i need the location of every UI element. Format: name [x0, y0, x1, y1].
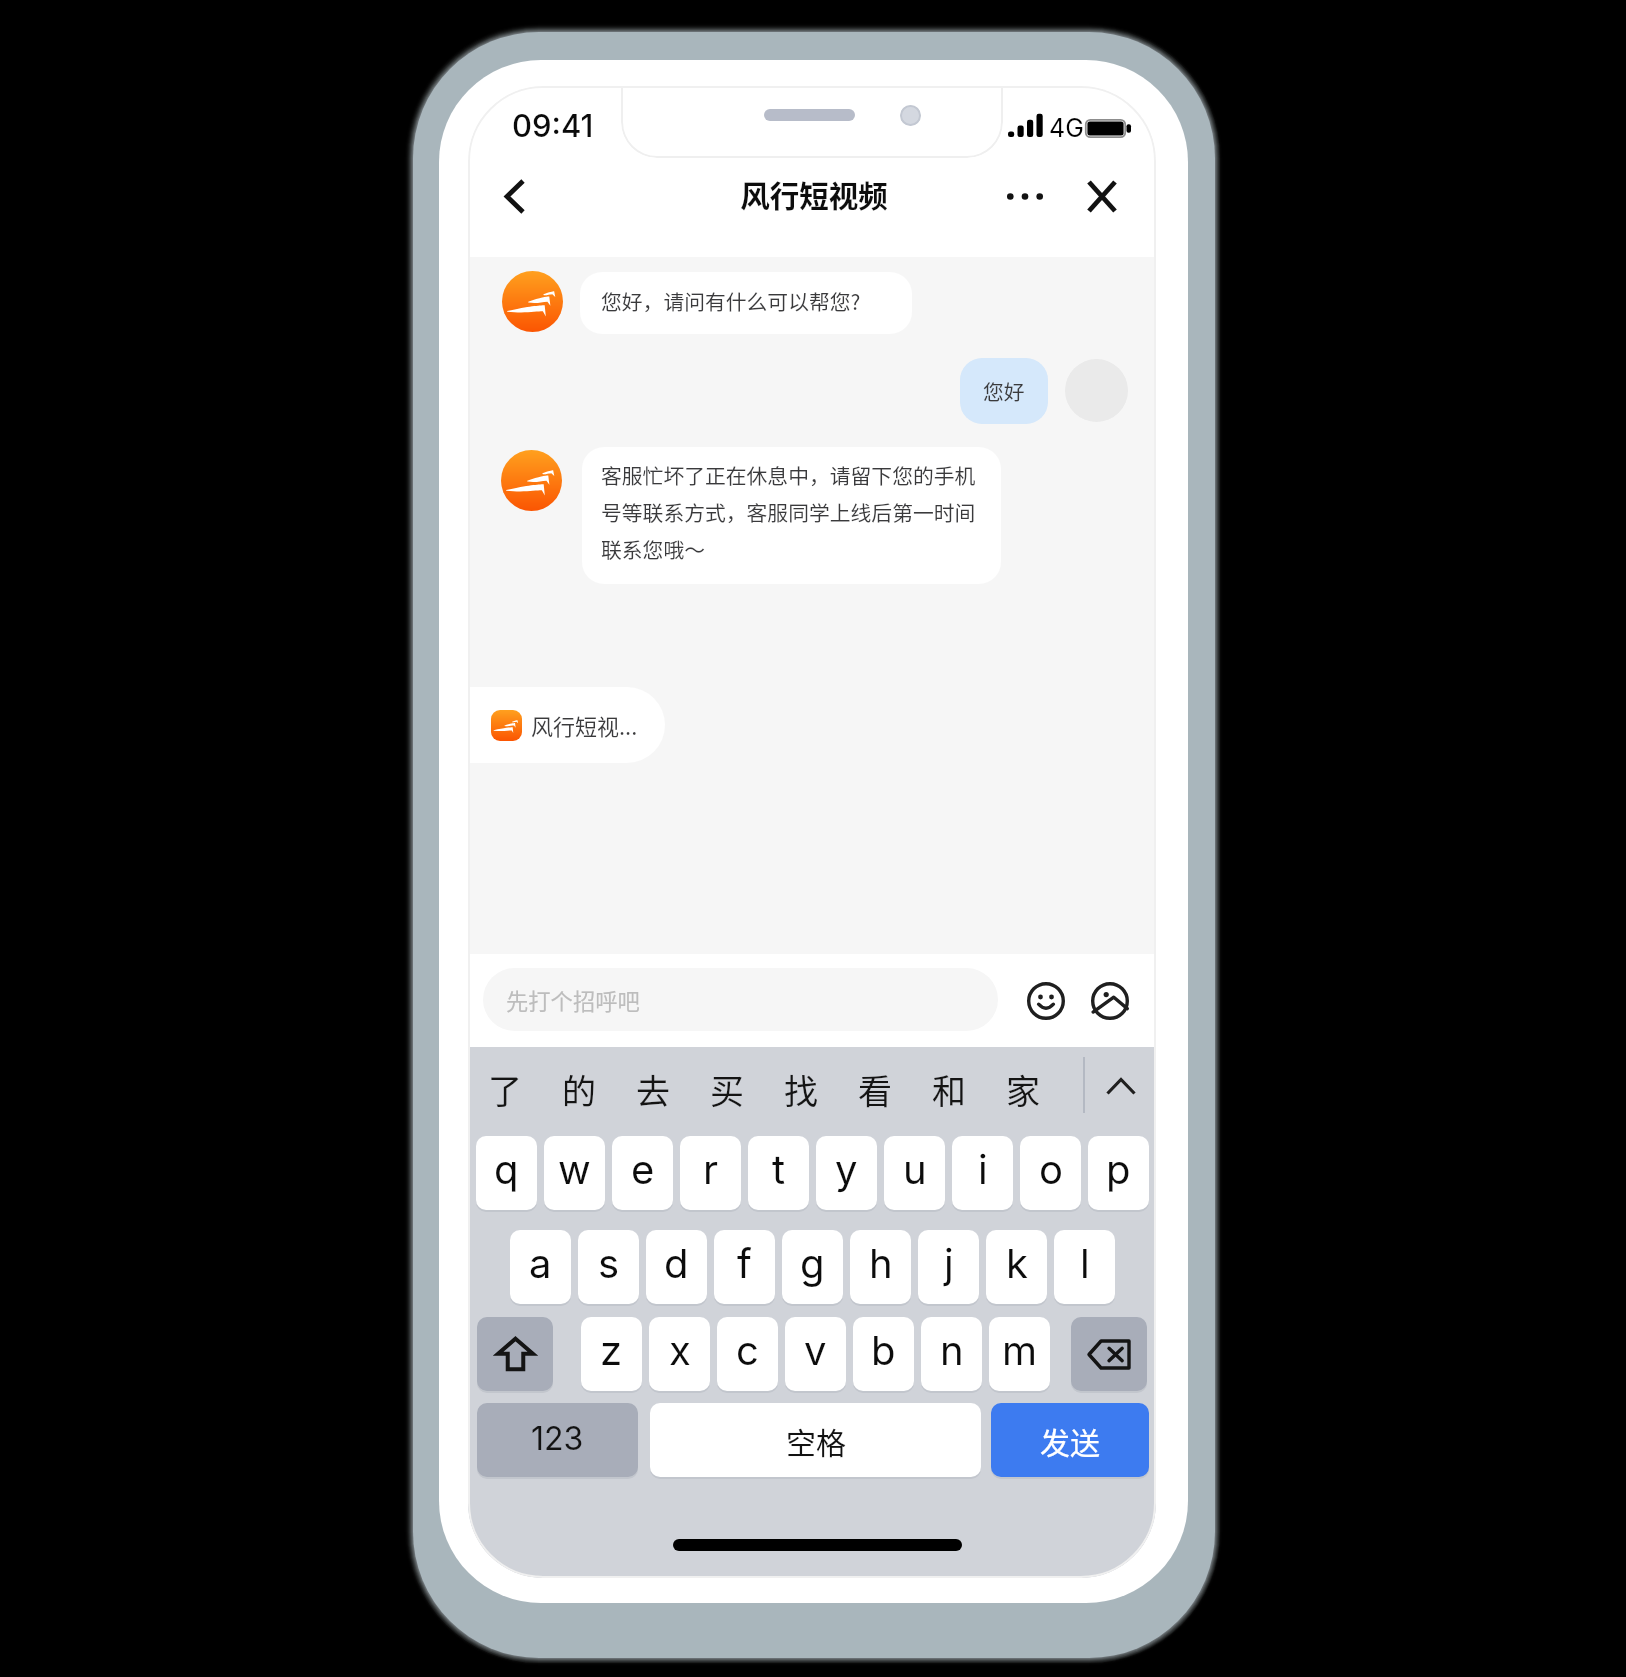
button[interactable]: Send image: [1080, 971, 1140, 1031]
staticText: 家: [1006, 1065, 1040, 1114]
button[interactable]: Back: [485, 166, 545, 226]
button[interactable]: Shift: [477, 1317, 553, 1391]
button[interactable]: 123: [477, 1403, 638, 1477]
button[interactable]: h: [850, 1230, 911, 1304]
staticText: 09:41: [512, 107, 594, 145]
staticText: k: [1006, 1239, 1028, 1287]
staticText: h: [869, 1239, 893, 1287]
button[interactable]: r: [680, 1136, 741, 1210]
button[interactable]: b: [853, 1317, 914, 1391]
staticText: y: [835, 1145, 858, 1193]
staticText: 发送: [1040, 1419, 1100, 1462]
button[interactable]: Emoji: [1016, 971, 1076, 1031]
button[interactable]: i: [952, 1136, 1013, 1210]
button[interactable]: n: [921, 1317, 982, 1391]
button[interactable]: q: [476, 1136, 537, 1210]
staticText: 风行短视频: [470, 173, 1156, 216]
button[interactable]: p: [1088, 1136, 1149, 1210]
button[interactable]: Backspace: [1071, 1317, 1147, 1391]
staticText: 您好: [983, 376, 1025, 406]
staticText: n: [940, 1326, 964, 1374]
staticText: 123: [531, 1419, 584, 1458]
staticText: 去: [636, 1065, 670, 1114]
staticText: j: [944, 1239, 954, 1287]
button[interactable]: 家: [986, 1049, 1060, 1129]
staticText: q: [494, 1145, 519, 1193]
staticText: 买: [710, 1065, 744, 1114]
button[interactable]: x: [649, 1317, 710, 1391]
staticText: t: [772, 1145, 786, 1193]
button[interactable]: a: [510, 1230, 571, 1304]
button[interactable]: m: [989, 1317, 1050, 1391]
button[interactable]: e: [612, 1136, 673, 1210]
staticText: 了: [488, 1065, 522, 1114]
button[interactable]: u: [884, 1136, 945, 1210]
button[interactable]: d: [646, 1230, 707, 1304]
button[interactable]: 风行短视...: [468, 687, 665, 763]
staticText: x: [669, 1326, 691, 1374]
staticText: m: [1002, 1326, 1038, 1374]
staticText: l: [1080, 1239, 1090, 1287]
button[interactable]: v: [785, 1317, 846, 1391]
button[interactable]: c: [717, 1317, 778, 1391]
button[interactable]: 和: [912, 1049, 986, 1129]
button[interactable]: g: [782, 1230, 843, 1304]
staticText: 找: [784, 1065, 818, 1114]
button[interactable]: w: [544, 1136, 605, 1210]
staticText: b: [871, 1326, 896, 1374]
button[interactable]: k: [986, 1230, 1047, 1304]
staticText: e: [631, 1145, 655, 1193]
staticText: p: [1106, 1145, 1131, 1193]
button[interactable]: 了: [468, 1049, 542, 1129]
staticText: s: [598, 1239, 620, 1287]
staticText: z: [600, 1326, 623, 1374]
button[interactable]: z: [581, 1317, 642, 1391]
button[interactable]: j: [918, 1230, 979, 1304]
button[interactable]: 您好，请问有什么可以帮您?: [580, 272, 912, 334]
staticText: a: [529, 1239, 552, 1287]
staticText: o: [1039, 1145, 1063, 1193]
button[interactable]: 客服忙坏了正在休息中，请留下您的手机号等联系方式，客服同学上线后第一时间联系您哦…: [582, 447, 1001, 584]
staticText: d: [664, 1239, 689, 1287]
button[interactable]: 去: [616, 1049, 690, 1129]
staticText: w: [558, 1145, 591, 1193]
staticText: 客服忙坏了正在休息中，请留下您的手机号等联系方式，客服同学上线后第一时间联系您哦…: [601, 460, 982, 564]
button[interactable]: 找: [764, 1049, 838, 1129]
staticText: u: [903, 1145, 927, 1193]
staticText: i: [978, 1145, 988, 1193]
button[interactable]: 买: [690, 1049, 764, 1129]
button[interactable]: s: [578, 1230, 639, 1304]
button[interactable]: 先打个招呼吧: [483, 968, 998, 1031]
button[interactable]: o: [1020, 1136, 1081, 1210]
staticText: 看: [858, 1065, 892, 1114]
staticText: 空格: [786, 1419, 846, 1462]
button[interactable]: f: [714, 1230, 775, 1304]
button[interactable]: 空格: [650, 1403, 981, 1477]
button[interactable]: Collapse keyboard: [1090, 1046, 1152, 1126]
button[interactable]: 发送: [991, 1403, 1149, 1477]
staticText: f: [737, 1239, 752, 1287]
staticText: 的: [562, 1065, 596, 1114]
button[interactable]: Close: [1072, 166, 1132, 226]
staticText: c: [736, 1326, 759, 1374]
staticText: 和: [932, 1065, 966, 1114]
staticText: g: [800, 1239, 825, 1287]
button[interactable]: 的: [542, 1049, 616, 1129]
staticText: v: [804, 1326, 827, 1374]
staticText: 您好，请问有什么可以帮您?: [601, 286, 861, 316]
staticText: 先打个招呼吧: [506, 984, 640, 1016]
button[interactable]: 看: [838, 1049, 912, 1129]
button[interactable]: 您好: [960, 358, 1048, 424]
staticText: 风行短视...: [531, 709, 638, 741]
button[interactable]: y: [816, 1136, 877, 1210]
button[interactable]: t: [748, 1136, 809, 1210]
staticText: r: [703, 1145, 719, 1193]
button[interactable]: l: [1054, 1230, 1115, 1304]
button[interactable]: More options: [995, 166, 1055, 226]
staticText: 4G: [1049, 113, 1084, 143]
